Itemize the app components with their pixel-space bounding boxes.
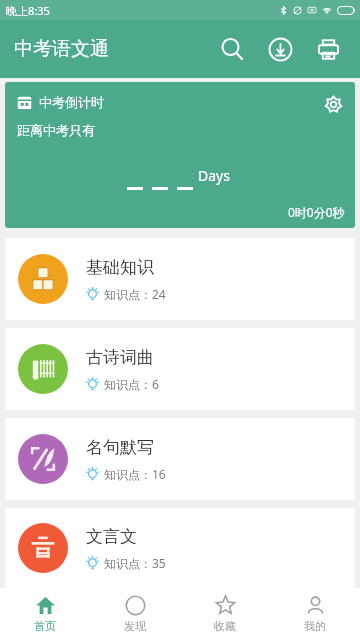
staticText: 收藏 (214, 619, 236, 633)
button[interactable]: 名句默写 (5, 418, 355, 500)
button[interactable]: Settings (319, 90, 347, 118)
staticText: 发现 (124, 619, 146, 633)
staticText: 文言文 (86, 526, 137, 547)
button[interactable]: 中考倒计时 (5, 82, 355, 228)
staticText: 0时0分0秒 (288, 204, 345, 220)
staticText: 名句默写 (86, 437, 154, 458)
staticText: 知识点：24 (104, 286, 166, 302)
button[interactable]: 基础知识 (5, 238, 355, 320)
staticText: 中考倒计时 (39, 94, 104, 110)
staticText: 知识点：35 (104, 555, 166, 571)
button[interactable]: Search (208, 25, 256, 73)
button[interactable]: 发现 (90, 588, 180, 640)
staticText: 我的 (304, 619, 326, 633)
staticText: 知识点：16 (104, 466, 166, 482)
staticText: 中考语文通 (14, 37, 109, 61)
button[interactable]: 首页 (0, 588, 90, 640)
staticText: 晚上8:35 (6, 3, 50, 18)
button[interactable]: 文言文 (5, 508, 355, 588)
staticText: 距离中考只有 (17, 122, 95, 138)
button[interactable]: Print (304, 25, 352, 73)
staticText: 首页 (34, 619, 56, 633)
button[interactable]: 收藏 (180, 588, 270, 640)
button[interactable]: 古诗词曲 (5, 328, 355, 410)
staticText: 古诗词曲 (86, 347, 154, 368)
button[interactable]: Download (256, 25, 304, 73)
staticText: 知识点：6 (104, 376, 159, 392)
staticText: 基础知识 (86, 257, 154, 278)
staticText: Days (198, 166, 230, 185)
button[interactable]: 我的 (270, 588, 360, 640)
